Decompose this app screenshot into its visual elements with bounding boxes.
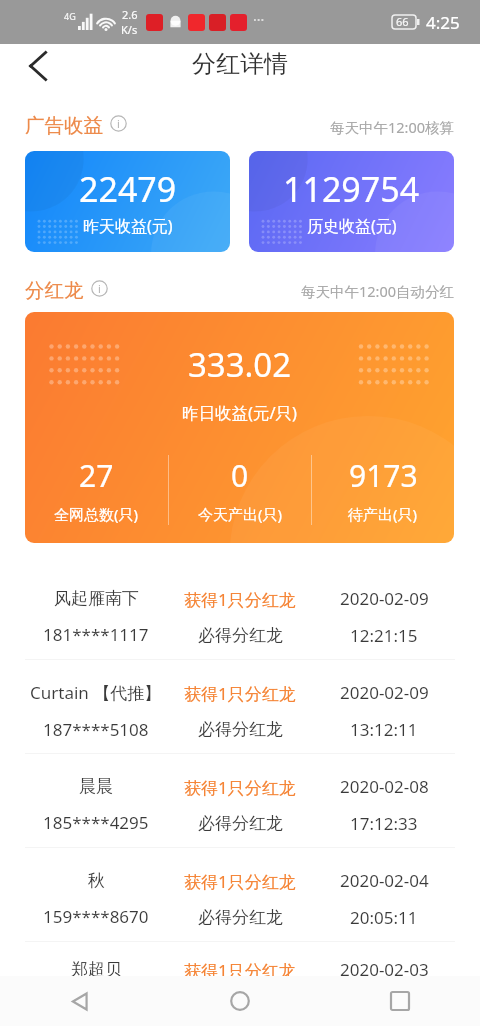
staticText: 获得1只分红龙 <box>184 870 296 893</box>
staticText: K/s <box>121 22 138 37</box>
staticText: 2020-02-09 <box>340 681 429 704</box>
staticText: 2.6 <box>122 7 138 22</box>
staticText: 2020-02-09 <box>340 587 429 610</box>
button[interactable]: 22479 <box>25 151 230 252</box>
button[interactable]: 郑超贝 <box>0 942 480 1026</box>
staticText: 昨天收益(元) <box>83 215 173 237</box>
button[interactable]: 风起雁南下 <box>0 566 480 659</box>
staticText: 187****5108 <box>43 718 149 741</box>
staticText: 获得1只分红龙 <box>184 776 296 799</box>
staticText: 待产出(只) <box>348 504 418 524</box>
staticText: 4:25 <box>426 11 460 34</box>
staticText: 13:12:11 <box>350 718 418 741</box>
button[interactable]: Back <box>17 44 61 88</box>
button[interactable]: Curtain 【代推】 <box>0 660 480 753</box>
staticText: 333.02 <box>25 342 454 387</box>
button[interactable]: Home <box>160 976 320 1026</box>
button[interactable]: Back <box>0 976 160 1026</box>
button[interactable]: 1129754 <box>249 151 454 252</box>
staticText: 晨晨 <box>79 776 113 797</box>
staticText: 秋 <box>88 870 105 891</box>
staticText: 每天中午12:00自动分红 <box>301 281 455 301</box>
staticText: 17:12:33 <box>350 812 418 835</box>
staticText: 185****4295 <box>43 811 149 834</box>
button[interactable]: 晨晨 <box>0 754 480 847</box>
staticText: 10:01:00 <box>350 995 418 1018</box>
staticText: 186****9999 <box>43 994 149 1017</box>
staticText: 每天中午12:00核算 <box>330 117 455 137</box>
staticText: 66 <box>396 14 409 29</box>
staticText: 4G <box>64 10 76 22</box>
button[interactable]: 秋 <box>0 848 480 941</box>
staticText: 0 <box>231 455 249 496</box>
staticText: 今天产出(只) <box>198 504 283 524</box>
staticText: 必得分红龙 <box>198 719 283 740</box>
button[interactable]: 333.02 <box>25 312 454 543</box>
staticText: 159****8670 <box>43 905 149 928</box>
staticText: 必得分红龙 <box>198 625 283 646</box>
staticText: 昨日收益(元/只) <box>25 401 454 424</box>
staticText: 22479 <box>79 166 177 212</box>
staticText: 获得1只分红龙 <box>184 959 296 982</box>
staticText: 1129754 <box>283 166 420 212</box>
staticText: 郑超贝 <box>71 959 122 980</box>
button[interactable]: Recents <box>320 976 480 1026</box>
staticText: 必得分红龙 <box>198 813 283 834</box>
staticText: 2020-02-04 <box>340 869 429 892</box>
staticText: 必得分红龙 <box>198 907 283 928</box>
staticText: 27 <box>79 455 114 496</box>
staticText: 分红龙 <box>25 278 84 303</box>
staticText: 2020-02-03 <box>340 958 429 981</box>
staticText: 9173 <box>349 455 418 496</box>
staticText: i <box>98 281 101 296</box>
staticText: i <box>117 116 120 131</box>
staticText: 全网总数(只) <box>54 504 139 524</box>
staticText: 分红详情 <box>192 49 288 79</box>
staticText: 必得分红龙 <box>198 996 283 1017</box>
staticText: 181****1117 <box>43 623 149 646</box>
staticText: ··· <box>253 10 265 29</box>
staticText: 风起雁南下 <box>54 588 139 609</box>
staticText: 历史收益(元) <box>307 215 397 237</box>
staticText: 20:05:11 <box>350 906 418 929</box>
staticText: 2020-02-08 <box>340 775 429 798</box>
staticText: 获得1只分红龙 <box>184 682 296 705</box>
staticText: Curtain 【代推】 <box>30 681 162 704</box>
staticText: 广告收益 <box>25 113 103 138</box>
staticText: 12:21:15 <box>350 624 418 647</box>
staticText: 获得1只分红龙 <box>184 588 296 611</box>
